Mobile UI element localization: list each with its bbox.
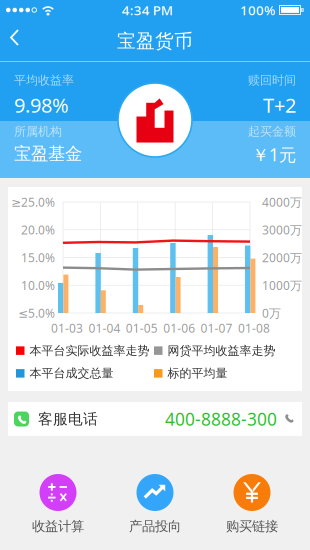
button[interactable]: 客服电话 [8, 402, 302, 436]
staticText: 01-06 [163, 320, 195, 336]
staticText: 0万 [262, 305, 281, 321]
staticText: 9.98% [14, 92, 69, 118]
staticText: 起买金额 [248, 124, 296, 139]
staticText: 2000万 [262, 249, 302, 265]
staticText: 标的平均量 [167, 366, 227, 381]
staticText: ￥1元 [252, 143, 296, 166]
staticText: 01-08 [238, 320, 270, 336]
staticText: 本平台成交总量 [29, 366, 113, 381]
staticText: 客服电话 [38, 410, 98, 428]
staticText: 宝盈基金 [14, 143, 82, 164]
staticText: 本平台实际收益率走势 [29, 343, 149, 358]
staticText: 4000万 [262, 194, 302, 210]
staticText: 100% [240, 1, 275, 19]
staticText: 01-05 [126, 320, 158, 336]
button[interactable]: 产品投向 [129, 474, 181, 534]
staticText: 20.0% [21, 222, 55, 238]
staticText: 网贷平均收益率走势 [167, 343, 275, 358]
button[interactable]: 收益计算 [32, 474, 84, 534]
staticText: 所属机构 [14, 124, 62, 139]
staticText: 1000万 [262, 277, 302, 293]
staticText: 01-03 [51, 320, 83, 336]
staticText: 01-07 [201, 320, 233, 336]
button[interactable]: 购买链接 [226, 474, 278, 534]
staticText: ≤5.0% [18, 305, 55, 321]
staticText: 400-8888-300 [165, 407, 277, 430]
staticText: 4:34 PM [122, 1, 173, 19]
staticText: 平均收益率 [14, 73, 74, 88]
staticText: T+2 [263, 92, 296, 118]
staticText: 3000万 [262, 222, 302, 238]
staticText: 收益计算 [32, 518, 84, 534]
staticText: 15.0% [21, 249, 55, 265]
staticText: 01-04 [88, 320, 120, 336]
staticText: ≥25.0% [11, 194, 55, 210]
staticText: 10.0% [21, 277, 55, 293]
staticText: 赎回时间 [248, 73, 296, 88]
staticText: 产品投向 [129, 518, 181, 534]
staticText: 购买链接 [226, 518, 278, 534]
staticText: 宝盈货币 [117, 29, 193, 52]
button[interactable]: Back [2, 25, 34, 57]
